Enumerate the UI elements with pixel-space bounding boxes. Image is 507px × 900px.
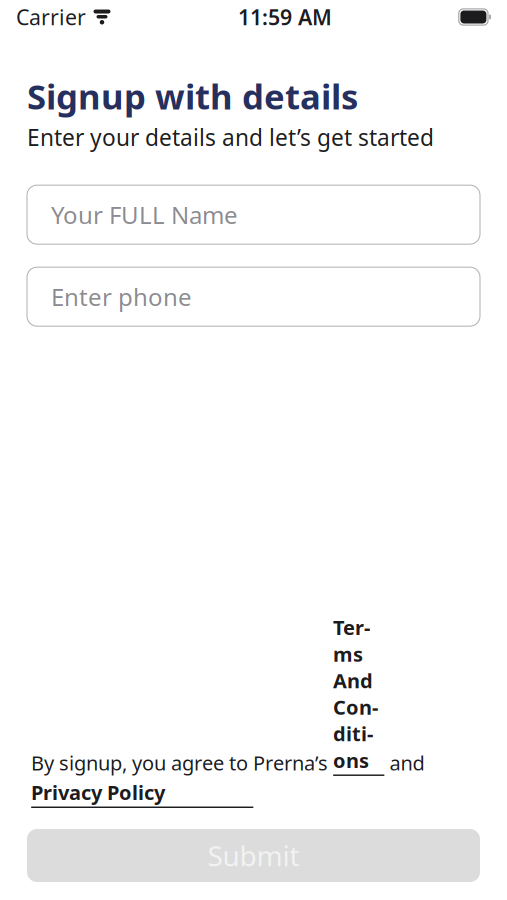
staticText: Enter your details and let’s get started: [27, 122, 434, 152]
button[interactable]: Terms And Conditions: [333, 614, 384, 776]
staticText: Privacy Policy: [31, 779, 165, 805]
staticText: 11:59 AM: [238, 3, 332, 31]
staticText: By signup, you agree to Prerna’s: [31, 749, 333, 776]
staticText: and: [384, 749, 424, 776]
staticText: Terms And Conditions: [333, 614, 378, 773]
staticText: Carrier: [16, 3, 86, 31]
button[interactable]: Privacy Policy: [31, 779, 253, 808]
button[interactable]: Enter phone: [27, 267, 480, 326]
staticText: Your FULL Name: [51, 199, 238, 231]
staticText: Enter phone: [51, 281, 192, 313]
button[interactable]: Submit: [27, 829, 480, 882]
staticText: Signup with details: [27, 73, 358, 119]
staticText: Submit: [207, 837, 299, 874]
button[interactable]: Your FULL Name: [27, 185, 480, 244]
